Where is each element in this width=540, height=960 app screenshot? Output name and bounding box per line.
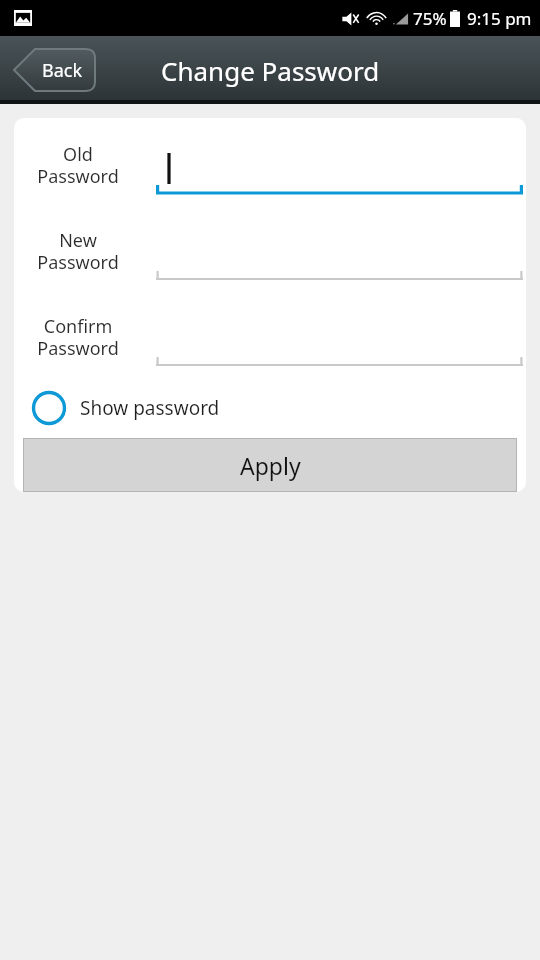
button[interactable]: Show password [31,386,220,430]
staticText: New Password [14,228,142,275]
staticText: Show password [80,395,220,421]
button[interactable] [156,134,523,196]
button[interactable] [156,220,523,282]
button[interactable]: Apply [23,438,517,492]
staticText: Back [42,58,83,83]
staticText: Old Password [14,142,142,189]
staticText: Apply [240,450,301,481]
staticText: 9:15 pm [467,7,532,30]
staticText: Confirm Password [14,314,142,361]
staticText: Change Password [161,53,380,88]
staticText: 75% [413,7,447,30]
button[interactable] [156,306,523,368]
button[interactable]: Back [14,49,95,91]
